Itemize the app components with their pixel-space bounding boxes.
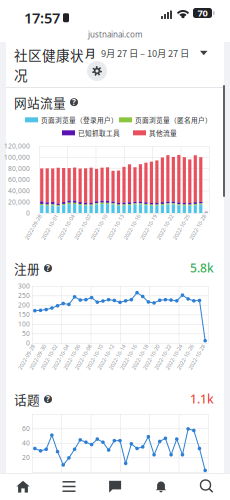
staticText: 2022-10-26 <box>171 353 199 361</box>
staticText: 70 <box>197 7 207 19</box>
staticText: 250 <box>18 291 30 300</box>
staticText: 2022-10-19 <box>134 223 162 231</box>
staticText: 2022-10-24 <box>160 353 188 361</box>
staticText: 40 <box>22 439 30 447</box>
staticText: 20 <box>22 453 30 462</box>
staticText: 2022-10-28 <box>183 353 211 361</box>
staticText: 50 <box>22 329 30 338</box>
staticText: 120,000 <box>4 142 30 150</box>
staticText: 2022-10-20 <box>137 353 165 361</box>
staticText: 月 <box>85 45 96 61</box>
staticText: 2022-10-08 <box>69 353 97 361</box>
staticText: 0 <box>26 209 30 217</box>
staticText: 2022-10-06 <box>58 353 86 361</box>
staticText: 2022-10-04 <box>52 223 80 231</box>
staticText: 1.1k <box>190 391 214 407</box>
staticText: 80,000 <box>8 164 30 173</box>
staticText: 20,000 <box>8 197 30 206</box>
staticText: 2022-10-14 <box>103 353 131 361</box>
staticText: justnainai.com <box>88 29 142 40</box>
staticText: 已知抓取工具 <box>78 128 120 138</box>
staticText: 2022-10-10 <box>80 353 108 361</box>
button[interactable]: 设置 <box>87 61 107 81</box>
staticText: 页面浏览量（匿名用户） <box>135 115 212 125</box>
staticText: 2022-09-28 <box>19 223 47 231</box>
staticText: 0 <box>26 339 30 347</box>
staticText: 2022-10-25 <box>167 223 195 231</box>
staticText: 2022-10-22 <box>149 353 177 361</box>
staticText: 2022-09-30 <box>24 353 52 361</box>
staticText: 2022-09-28 <box>12 353 40 361</box>
staticText: ? <box>72 97 76 107</box>
staticText: 5.8k <box>190 260 214 276</box>
staticText: 2022-10-02 <box>35 353 63 361</box>
button[interactable]: 首页 <box>0 473 46 500</box>
staticText: 2022-10-13 <box>101 223 129 231</box>
staticText: 2022-10-07 <box>69 223 97 231</box>
staticText: 2022-10-01 <box>36 223 64 231</box>
staticText: 17:57 <box>24 8 60 27</box>
staticText: ? <box>46 263 50 273</box>
staticText: 注册 <box>14 259 40 277</box>
staticText: 2022-10-28 <box>184 223 212 231</box>
staticText: 200 <box>18 301 30 309</box>
staticText: 2022-10-22 <box>151 223 179 231</box>
staticText: 2022-10-10 <box>85 223 113 231</box>
staticText: 100 <box>18 320 30 328</box>
staticText: 其他流量 <box>149 128 177 138</box>
staticText: 2022-10-12 <box>92 353 120 361</box>
staticText: 9月 27 日 – 10月 27 日 <box>101 46 189 60</box>
staticText: 300 <box>18 282 30 290</box>
staticText: 页面浏览量（登录用户） <box>41 115 118 125</box>
button[interactable]: 搜索 <box>184 473 230 500</box>
staticText: 100,000 <box>4 153 30 162</box>
staticText: 网站流量 <box>14 93 66 111</box>
staticText: 2022-10-16 <box>118 223 146 231</box>
staticText: 话题 <box>14 390 40 408</box>
staticText: 60 <box>22 424 30 433</box>
staticText: 社区健康状况 <box>14 45 84 84</box>
button[interactable]: 消息 <box>92 473 138 500</box>
staticText: 2022-10-16 <box>114 353 142 361</box>
staticText: 2022-10-18 <box>126 353 154 361</box>
staticText: 150 <box>18 310 30 319</box>
button[interactable]: 菜单 <box>46 473 92 500</box>
button[interactable]: 通知 <box>138 473 184 500</box>
staticText: 40,000 <box>8 186 30 195</box>
staticText: 60,000 <box>8 175 30 184</box>
staticText: ? <box>46 394 50 404</box>
staticText: 2022-10-04 <box>46 353 74 361</box>
